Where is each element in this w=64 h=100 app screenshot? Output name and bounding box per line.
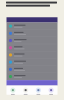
button[interactable] [6, 73, 57, 80]
button[interactable] [6, 30, 57, 37]
button[interactable] [6, 58, 57, 66]
button[interactable] [6, 44, 57, 51]
button[interactable]: Scan [6, 88, 19, 95]
button[interactable] [6, 37, 57, 44]
button[interactable]: Save [45, 88, 58, 95]
button[interactable] [6, 23, 57, 30]
button[interactable]: Print [19, 88, 32, 95]
button[interactable] [6, 66, 57, 73]
button[interactable]: Share [32, 88, 45, 95]
button[interactable] [6, 51, 57, 59]
